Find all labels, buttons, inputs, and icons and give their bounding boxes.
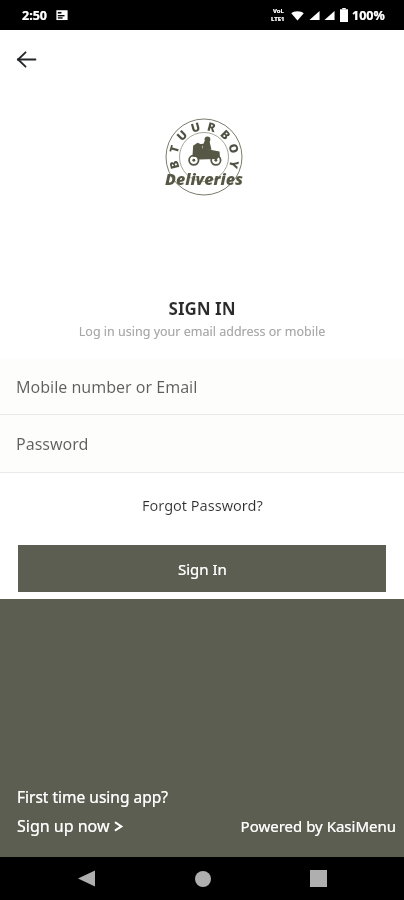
staticText: Powered by KasiMenu [0,816,396,836]
button[interactable]: Forgot Password? [0,490,404,520]
button[interactable]: Mobile number or Email [16,359,388,415]
staticText: Forgot Password? [142,495,263,515]
button[interactable]: Password [16,415,388,473]
staticText: Password [16,433,89,455]
staticText: First time using app? [17,786,168,807]
button[interactable]: Home [181,857,225,900]
button[interactable]: Back [64,857,108,900]
staticText: Sign up now [17,815,110,837]
staticText: SIGN IN [0,297,404,320]
button[interactable]: Sign In [18,545,386,592]
staticText: 100% [352,7,385,24]
staticText: LTE1 [271,15,285,23]
staticText: VoL [273,7,284,15]
button[interactable]: Sign up now [17,815,123,837]
staticText: Mobile number or Email [16,376,198,398]
staticText: 2:50 [22,7,47,24]
button[interactable]: Back [4,37,48,81]
staticText: Sign In [178,559,227,579]
staticText: Log in using your email address or mobil… [0,323,404,340]
staticText: Deliveries [144,168,264,190]
button[interactable]: Recent apps [296,857,340,900]
